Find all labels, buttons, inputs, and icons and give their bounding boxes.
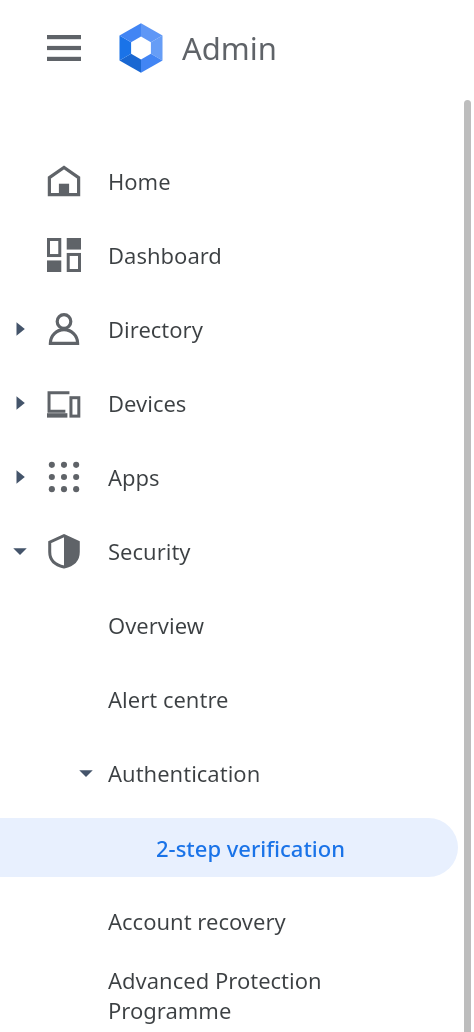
- button[interactable]: Security: [0, 514, 474, 588]
- staticText: Directory: [108, 314, 203, 344]
- button[interactable]: Account recovery: [0, 884, 474, 958]
- button[interactable]: Authentication: [0, 736, 474, 810]
- staticText: Overview: [108, 610, 438, 640]
- staticText: Devices: [108, 388, 187, 418]
- staticText: Alert centre: [108, 684, 438, 714]
- staticText: Apps: [108, 462, 160, 492]
- button[interactable]: Overview: [0, 588, 474, 662]
- staticText: Authentication: [108, 758, 438, 788]
- button[interactable]: Directory: [0, 292, 474, 366]
- button[interactable]: Advanced Protection Programme: [0, 958, 474, 1032]
- button[interactable]: 2-step verification: [0, 818, 458, 877]
- staticText: Account recovery: [108, 906, 438, 936]
- staticText: Admin: [182, 27, 278, 69]
- button[interactable]: Apps: [0, 440, 474, 514]
- button[interactable]: Home: [0, 144, 474, 218]
- staticText: Dashboard: [108, 240, 222, 270]
- staticText: Security: [108, 536, 191, 566]
- staticText: 2-step verification: [156, 833, 345, 863]
- staticText: Advanced Protection Programme: [108, 965, 438, 1026]
- staticText: Home: [108, 166, 171, 196]
- button[interactable]: Dashboard: [0, 218, 474, 292]
- button[interactable]: Devices: [0, 366, 474, 440]
- button[interactable]: Alert centre: [0, 662, 474, 736]
- button[interactable]: Open navigation menu: [38, 26, 90, 70]
